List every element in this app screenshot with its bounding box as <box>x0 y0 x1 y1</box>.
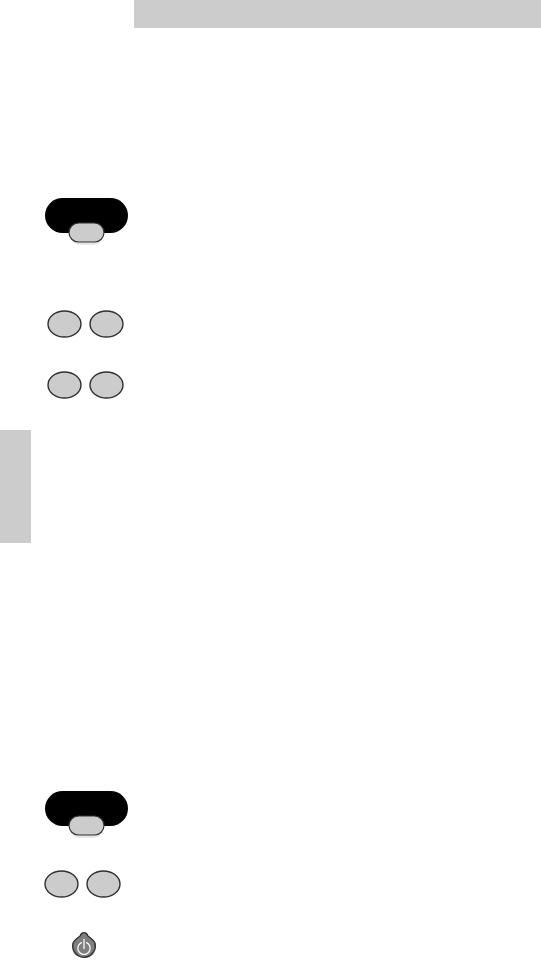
button[interactable]: Option 1 <box>48 311 81 337</box>
button[interactable]: Option 6 <box>87 871 120 897</box>
button[interactable]: Option 4 <box>90 372 123 398</box>
button[interactable]: Toggle 1 <box>45 198 128 243</box>
button[interactable]: Option 2 <box>90 311 123 337</box>
button[interactable]: Power <box>72 932 96 958</box>
button[interactable]: Toggle 2 <box>45 791 128 836</box>
button[interactable]: Option 3 <box>48 372 81 398</box>
button[interactable]: Option 5 <box>45 871 78 897</box>
